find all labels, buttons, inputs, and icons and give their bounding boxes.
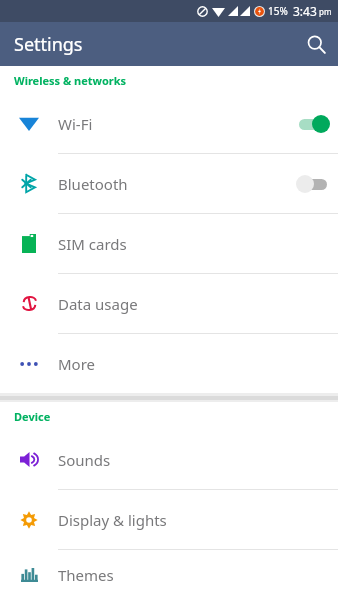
button[interactable]: Themes [0,550,338,600]
staticText: pm [319,6,332,17]
staticText: Sounds [58,450,326,470]
staticText: Settings [14,32,83,57]
button[interactable]: Sounds [0,430,338,489]
button[interactable]: SIM cards [0,214,338,273]
staticText: More [58,354,326,374]
staticText: SIM cards [58,234,326,254]
staticText: 3:43 [293,3,317,19]
button[interactable]: Display & lights [0,490,338,549]
staticText: Display & lights [58,510,326,530]
staticText: Themes [58,565,326,585]
button[interactable]: Search [294,22,338,66]
button[interactable]: Wi-Fi [0,94,338,153]
staticText: 15% [268,4,288,18]
button[interactable]: Data usage [0,274,338,333]
staticText: Wireless & networks [14,73,127,88]
staticText: Device [14,409,51,424]
button[interactable]: More [0,334,338,393]
staticText: Data usage [58,294,326,314]
staticText: Bluetooth [58,174,288,194]
button[interactable]: Bluetooth [0,154,338,213]
staticText: Wi-Fi [58,114,288,134]
